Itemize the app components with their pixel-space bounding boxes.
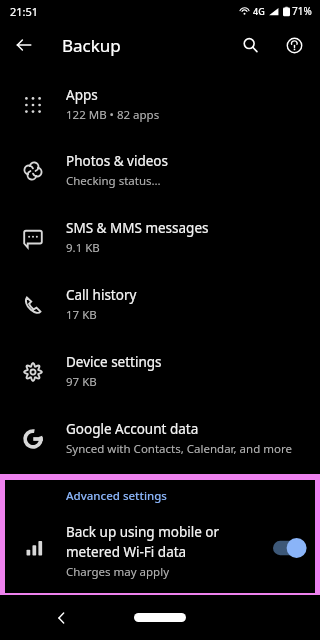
button[interactable]: Back up using mobile or — [2, 517, 318, 591]
button[interactable]: Back up using mobile data toggle — [262, 517, 318, 579]
button[interactable]: Device settings — [0, 338, 320, 405]
staticText: SMS & MMS messages — [66, 219, 209, 237]
button[interactable]: Back — [6, 27, 42, 63]
button[interactable]: Search — [232, 27, 268, 63]
staticText: Apps — [66, 86, 98, 104]
button[interactable]: Call history — [0, 271, 320, 338]
staticText: 71% — [292, 4, 312, 18]
staticText: Device settings — [66, 353, 162, 371]
staticText: Synced with Contacts, Calendar, and more — [66, 441, 292, 457]
button[interactable]: Apps — [0, 72, 320, 137]
staticText: Back up using mobile or — [66, 523, 220, 541]
button[interactable]: Back — [48, 604, 76, 632]
button[interactable]: SMS & MMS messages — [0, 204, 320, 271]
staticText: 97 KB — [66, 374, 97, 390]
staticText: Call history — [66, 286, 137, 304]
staticText: 21:51 — [10, 4, 39, 19]
staticText: 9.1 KB — [66, 240, 100, 256]
staticText: Charges may apply — [66, 564, 170, 580]
button[interactable]: Photos & videos — [0, 137, 320, 204]
staticText: Advanced settings — [66, 488, 167, 504]
staticText: 122 MB • 82 apps — [66, 107, 160, 123]
staticText: 4G — [253, 5, 265, 17]
staticText: Checking status… — [66, 173, 161, 189]
staticText: Google Account data — [66, 420, 199, 438]
staticText: Photos & videos — [66, 152, 168, 170]
button[interactable]: Home — [134, 613, 186, 622]
staticText: Backup — [62, 34, 121, 57]
staticText: 17 KB — [66, 307, 97, 323]
button[interactable]: Google Account data — [0, 405, 320, 472]
staticText: metered Wi-Fi data — [66, 543, 187, 561]
button[interactable]: Help — [276, 27, 312, 63]
